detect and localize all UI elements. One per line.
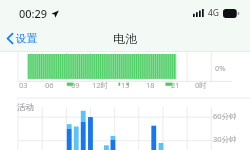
staticText: 0% <box>215 63 226 73</box>
staticText: 活动 <box>17 102 34 113</box>
staticText: 09 <box>71 80 80 90</box>
staticText: 设置 <box>16 32 37 45</box>
staticText: 21 <box>171 80 180 90</box>
staticText: 03 <box>19 80 28 90</box>
staticText: 15 <box>121 80 130 90</box>
staticText: 30分钟 <box>213 134 237 144</box>
staticText: 60分钟 <box>213 111 237 121</box>
staticText: 06 <box>45 80 54 90</box>
staticText: 18 <box>146 80 155 90</box>
staticText: 0时 <box>195 80 207 90</box>
staticText: 00:29 <box>19 6 48 21</box>
staticText: 4G <box>208 7 220 19</box>
button[interactable]: 返回 设置 <box>0 28 45 49</box>
staticText: 电池 <box>113 31 137 46</box>
staticText: 12时 <box>92 80 109 90</box>
